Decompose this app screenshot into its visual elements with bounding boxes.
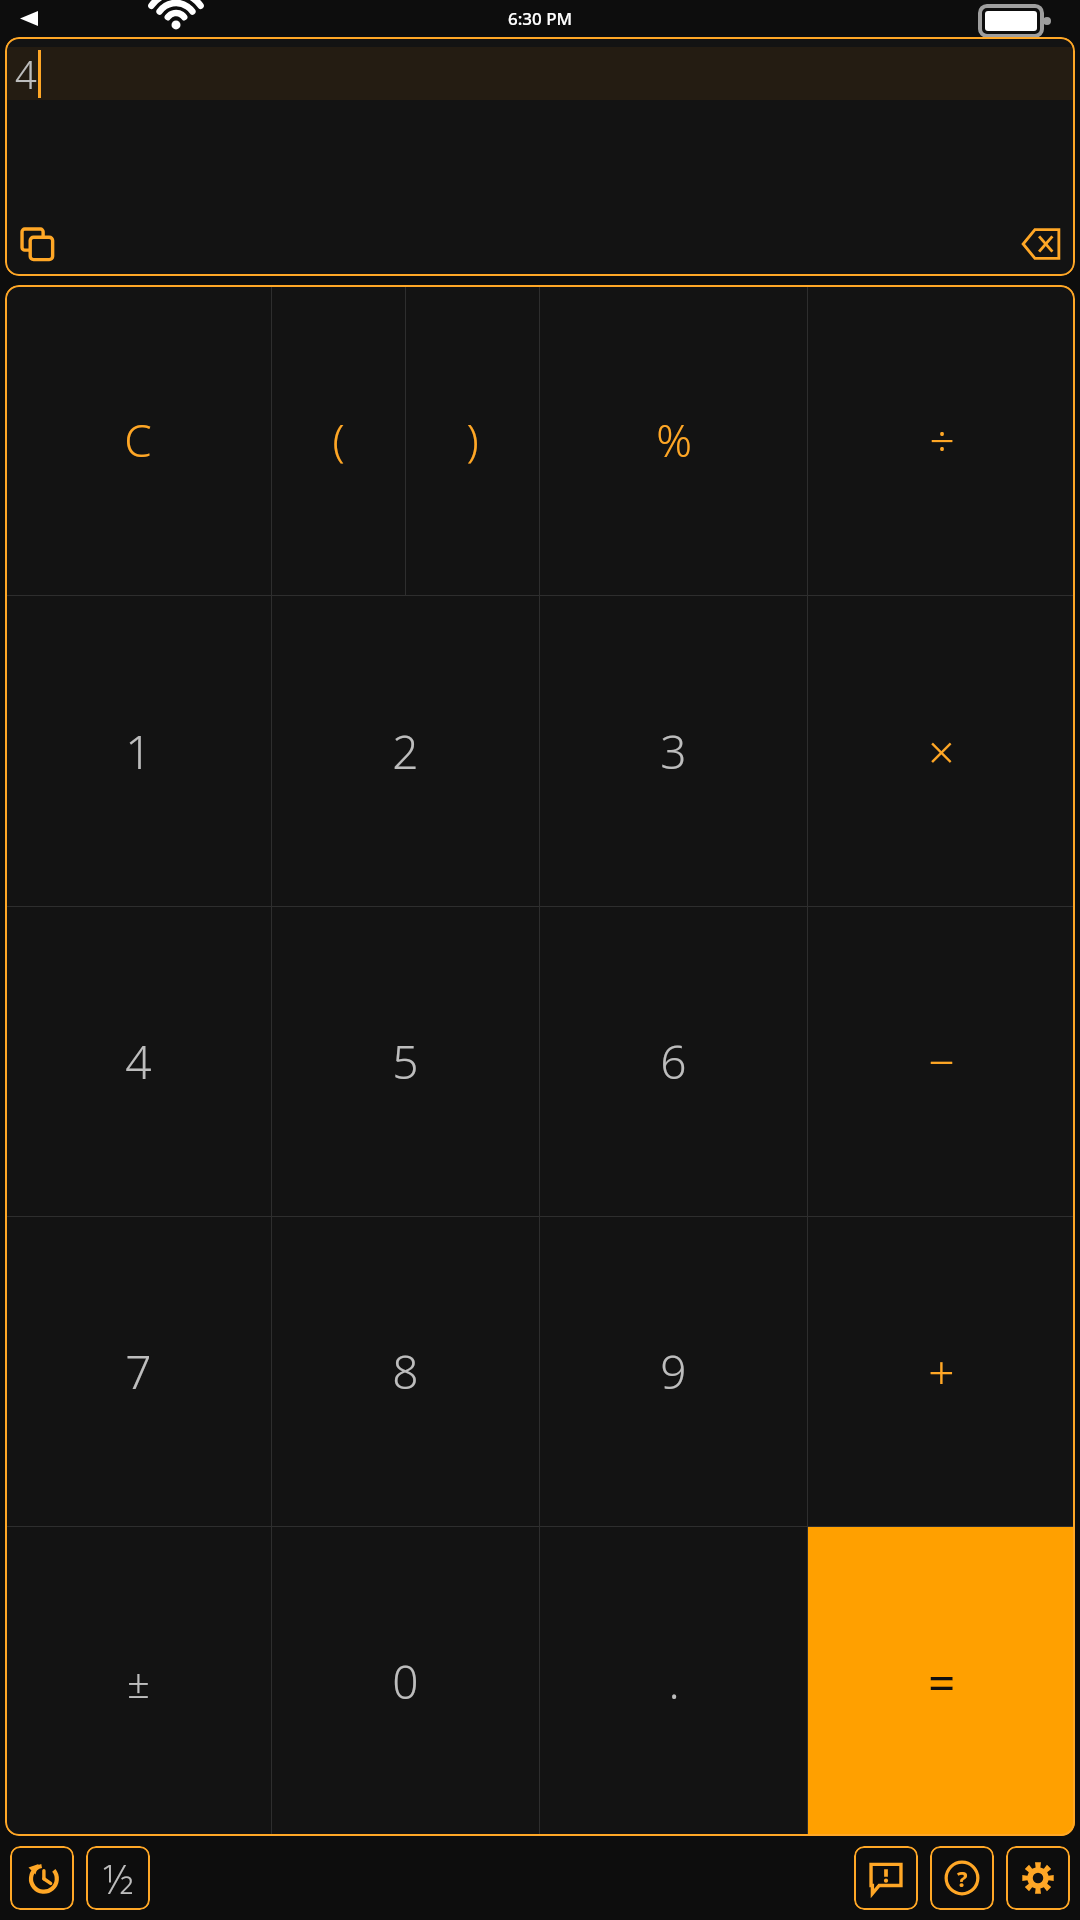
staticText: 7: [125, 1340, 152, 1403]
staticText: C: [124, 410, 152, 470]
staticText: 2: [392, 720, 419, 783]
staticText: ×: [928, 720, 955, 783]
button[interactable]: 1: [5, 596, 271, 906]
staticText: 4: [125, 1030, 152, 1093]
button[interactable]: 0: [272, 1527, 539, 1836]
staticText: 9: [660, 1340, 687, 1403]
button[interactable]: ×: [808, 596, 1075, 906]
button[interactable]: =: [808, 1527, 1075, 1836]
button[interactable]: %: [540, 285, 807, 595]
button[interactable]: 6: [540, 907, 807, 1216]
staticText: %: [656, 410, 692, 470]
button[interactable]: 9: [540, 1217, 807, 1526]
staticText: ?: [957, 1863, 968, 1893]
button[interactable]: 7: [5, 1217, 271, 1526]
staticText: ÷: [929, 410, 955, 470]
button[interactable]: ÷: [808, 285, 1075, 595]
button[interactable]: 2: [272, 596, 539, 906]
button[interactable]: (: [272, 285, 405, 595]
button[interactable]: Backspace: [1017, 220, 1065, 268]
button[interactable]: 5: [272, 907, 539, 1216]
button[interactable]: Feedback: [854, 1846, 918, 1910]
button[interactable]: 4: [5, 47, 1075, 100]
staticText: .: [668, 1650, 680, 1713]
button[interactable]: ): [406, 285, 539, 595]
staticText: +: [928, 1340, 955, 1403]
button[interactable]: 4: [5, 907, 271, 1216]
staticText: 6:30 PM: [508, 7, 573, 30]
button[interactable]: .: [540, 1527, 807, 1836]
button[interactable]: Fraction: [86, 1846, 150, 1910]
staticText: 5: [392, 1030, 419, 1093]
button[interactable]: C: [5, 285, 271, 595]
button[interactable]: Settings: [1006, 1846, 1070, 1910]
staticText: 8: [392, 1340, 419, 1403]
button[interactable]: 8: [272, 1217, 539, 1526]
staticText: ½: [103, 1851, 134, 1905]
button[interactable]: 3: [540, 596, 807, 906]
staticText: (: [332, 410, 345, 470]
button[interactable]: +: [808, 1217, 1075, 1526]
button[interactable]: Copy: [15, 222, 59, 266]
button[interactable]: History: [10, 1846, 74, 1910]
button[interactable]: ±: [5, 1527, 271, 1836]
button[interactable]: Help: [930, 1846, 994, 1910]
staticText: 0: [392, 1650, 419, 1713]
staticText: ±: [127, 1655, 150, 1709]
staticText: 4: [15, 48, 37, 100]
staticText: =: [928, 1649, 956, 1714]
button[interactable]: −: [808, 907, 1075, 1216]
staticText: −: [928, 1030, 955, 1093]
staticText: ): [466, 410, 479, 470]
staticText: 3: [660, 720, 687, 783]
staticText: 1: [125, 720, 152, 783]
staticText: 6: [660, 1030, 687, 1093]
